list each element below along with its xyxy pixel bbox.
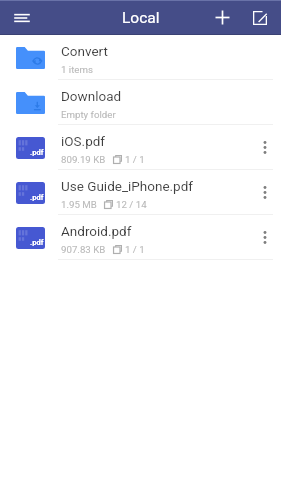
button[interactable]: More options: [248, 125, 281, 170]
staticText: Empty folder: [61, 109, 116, 120]
staticText: 809.19 KB: [61, 154, 106, 165]
staticText: 907.83 KB: [61, 244, 106, 255]
staticText: 1.95 MB: [61, 199, 97, 210]
button[interactable]: .pdf: [0, 215, 281, 260]
staticText: Use Guide_iPhone.pdf: [61, 178, 194, 194]
button[interactable]: Menu: [0, 0, 44, 35]
staticText: Download: [61, 88, 122, 104]
button[interactable]: More options: [248, 170, 281, 215]
staticText: iOS.pdf: [61, 133, 106, 149]
staticText: Convert: [61, 43, 108, 59]
staticText: 1 / 1: [125, 154, 145, 165]
button[interactable]: Add: [203, 0, 241, 35]
staticText: .pdf: [30, 148, 44, 157]
staticText: Android.pdf: [61, 223, 132, 239]
button[interactable]: Edit: [241, 0, 279, 35]
button[interactable]: .pdf: [0, 170, 281, 215]
staticText: 12 / 14: [116, 199, 147, 210]
button[interactable]: More options: [248, 215, 281, 260]
button[interactable]: Download: [0, 80, 281, 125]
staticText: 1 / 1: [125, 244, 145, 255]
button[interactable]: .pdf: [0, 125, 281, 170]
staticText: .pdf: [30, 193, 44, 202]
staticText: .pdf: [30, 238, 44, 247]
button[interactable]: Convert: [0, 35, 281, 80]
staticText: Local: [122, 9, 160, 27]
staticText: 1 items: [61, 64, 94, 75]
